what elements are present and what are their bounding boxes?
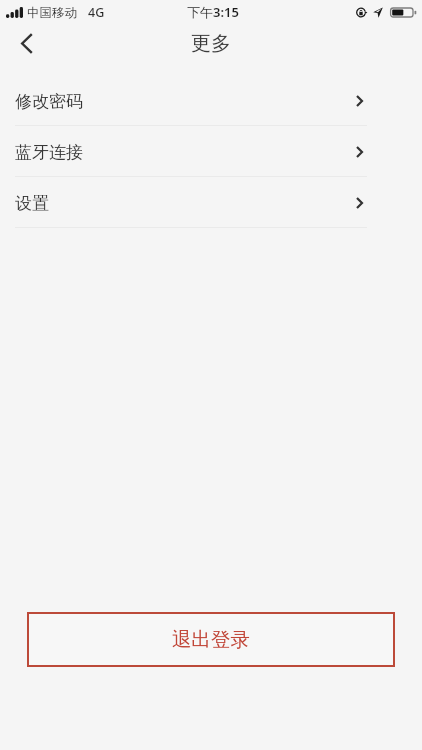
staticText: 设置	[15, 193, 49, 214]
staticText: 退出登录	[172, 627, 250, 652]
staticText: 修改密码	[15, 91, 83, 112]
button[interactable]: 修改密码	[0, 75, 422, 126]
button[interactable]: Back	[0, 24, 52, 68]
staticText: 4G	[88, 4, 105, 21]
staticText: 中国移动	[27, 5, 77, 21]
staticText: 下午3:15	[187, 3, 239, 21]
button[interactable]: 退出登录	[27, 612, 395, 667]
button[interactable]: 蓝牙连接	[0, 126, 422, 177]
staticText: 蓝牙连接	[15, 142, 83, 163]
staticText: 更多	[191, 31, 231, 56]
button[interactable]: 设置	[0, 177, 422, 228]
